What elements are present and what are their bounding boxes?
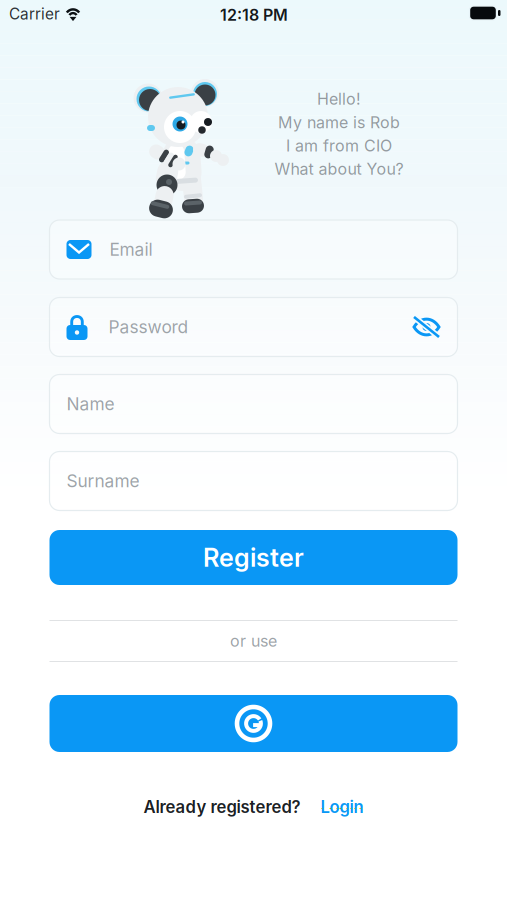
staticText: What about You? <box>274 159 403 179</box>
button[interactable]: Register <box>49 530 457 585</box>
button[interactable]: Surname <box>49 451 457 510</box>
button[interactable]: Name <box>49 374 457 433</box>
staticText: Already registered? <box>143 797 300 817</box>
staticText: 12:18 PM <box>220 5 288 25</box>
staticText: Password <box>108 316 188 337</box>
button[interactable]: Password <box>49 297 457 356</box>
staticText: Carrier <box>9 5 60 23</box>
staticText: Email <box>109 239 152 260</box>
staticText: Login <box>320 797 363 817</box>
staticText: My name is Rob <box>278 113 400 132</box>
button[interactable]: Email <box>49 220 457 279</box>
staticText: Hello! <box>317 89 361 109</box>
button[interactable]: Sign up with Google <box>49 695 457 752</box>
staticText: Surname <box>66 470 139 491</box>
staticText: I am from CIO <box>286 136 392 155</box>
staticText: or use <box>230 631 277 651</box>
button[interactable]: Login <box>320 797 363 817</box>
staticText: Register <box>203 542 304 573</box>
staticText: Name <box>66 393 114 414</box>
